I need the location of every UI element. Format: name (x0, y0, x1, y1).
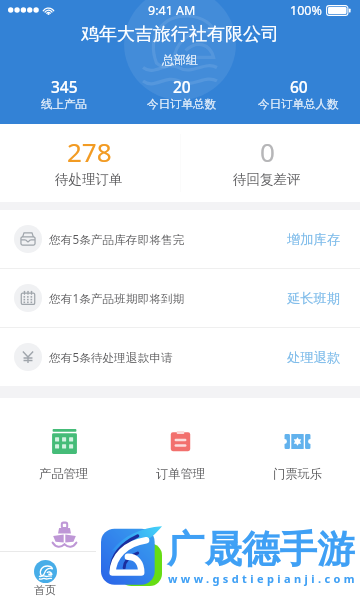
staticText: 待处理订单 (55, 171, 123, 188)
staticText: 您有1条产品班期即将到期 (49, 290, 185, 306)
other: 我的 (304, 560, 327, 583)
staticText: 您有5条产品库存即将售完 (49, 231, 185, 247)
button[interactable] (6, 521, 122, 548)
other: 产品 (214, 560, 237, 583)
staticText: 60 (290, 76, 308, 97)
button[interactable]: 0 (178, 124, 356, 202)
staticText: 0 (260, 134, 275, 169)
staticText: 广晟德手游 (167, 526, 355, 573)
staticText: 100% (290, 2, 322, 19)
staticText: 20 (173, 76, 191, 97)
staticText: 我的 (304, 583, 326, 597)
staticText: 广晟德手游 (169, 524, 357, 571)
staticText: 订单 (124, 583, 146, 597)
staticText: 278 (67, 134, 112, 169)
staticText: 今日订单总人数 (258, 97, 339, 111)
staticText: www.gsdtiepianji.com (167, 571, 357, 586)
button[interactable]: 20 (123, 76, 240, 111)
staticText: www.gsdtiepianji.com (169, 570, 359, 585)
button[interactable]: 订单 (90, 552, 180, 600)
button[interactable]: 278 (0, 124, 178, 202)
staticText: 门票玩乐 (273, 466, 323, 481)
button[interactable]: 60 (240, 76, 357, 111)
staticText: 您有5条待处理退款申请 (49, 349, 173, 365)
staticText: 产品 (214, 583, 236, 597)
staticText: 总部组 (0, 52, 360, 67)
staticText: 345 (51, 76, 78, 97)
staticText: 鸡年大吉旅行社有限公司 (0, 23, 360, 46)
staticText: 广晟德手游 (169, 528, 357, 575)
other: 订单 (124, 560, 147, 583)
staticText: 今日订单总数 (147, 97, 216, 111)
button[interactable]: 首页 (0, 552, 90, 600)
staticText: 广晟德手游 (169, 526, 357, 573)
staticText: 9:41 AM (148, 2, 196, 19)
staticText: www.gsdtiepianji.com (168, 570, 358, 585)
staticText: 广晟德手游 (165, 526, 353, 573)
staticText: 线上产品 (41, 97, 87, 111)
staticText: 广晟德手游 (167, 528, 355, 575)
staticText: 首页 (34, 583, 56, 597)
staticText: www.gsdtiepianji.com (169, 572, 359, 587)
staticText: www.gsdtiepianji.com (167, 572, 357, 587)
button[interactable]: 您有1条产品班期即将到期 (0, 269, 360, 327)
staticText: 待回复差评 (233, 171, 301, 188)
staticText: www.gsdtiepianji.com (168, 571, 358, 586)
button[interactable]: 产品管理 (6, 428, 122, 481)
staticText: 广晟德手游 (165, 528, 353, 575)
other: 首页 (34, 560, 57, 583)
button[interactable]: 我的 (270, 552, 360, 600)
staticText: 延长班期 (287, 290, 341, 307)
button[interactable]: 您有5条待处理退款申请 (0, 328, 360, 386)
staticText: 处理退款 (287, 349, 341, 366)
staticText: 广晟德手游 (167, 524, 355, 571)
button[interactable]: 产品 (180, 552, 270, 600)
staticText: 增加库存 (287, 231, 341, 248)
button[interactable]: 门票玩乐 (239, 428, 356, 481)
button[interactable]: 订单管理 (122, 428, 239, 481)
staticText: 产品管理 (39, 466, 89, 481)
button[interactable]: 345 (5, 76, 123, 111)
button[interactable]: 您有5条产品库存即将售完 (0, 210, 360, 268)
staticText: www.gsdtiepianji.com (169, 571, 359, 586)
staticText: 订单管理 (156, 466, 206, 481)
staticText: www.gsdtiepianji.com (168, 572, 358, 587)
staticText: 广晟德手游 (165, 524, 353, 571)
staticText: www.gsdtiepianji.com (167, 570, 357, 585)
